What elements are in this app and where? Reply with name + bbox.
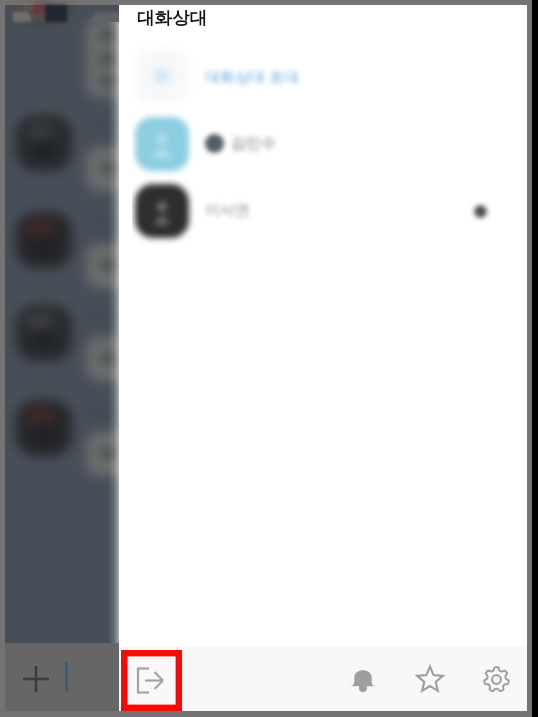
button[interactable]: 대화상대 초대 xyxy=(119,42,527,110)
button[interactable]: Notifications xyxy=(342,658,384,700)
button[interactable]: 이서연 xyxy=(119,177,527,244)
button[interactable]: Options xyxy=(463,194,497,228)
button[interactable]: Settings xyxy=(475,658,517,700)
button[interactable]: Favorites xyxy=(409,658,451,700)
button[interactable]: Add attachment xyxy=(11,654,61,704)
staticText: 대화상대 초대 xyxy=(205,66,299,86)
button[interactable]: Leave chat room xyxy=(121,650,182,711)
button[interactable]: 김민수 xyxy=(119,110,527,177)
staticText: 이서연 xyxy=(205,201,250,220)
staticText: 대화상대 xyxy=(137,7,207,29)
staticText: 김민수 xyxy=(231,134,276,153)
